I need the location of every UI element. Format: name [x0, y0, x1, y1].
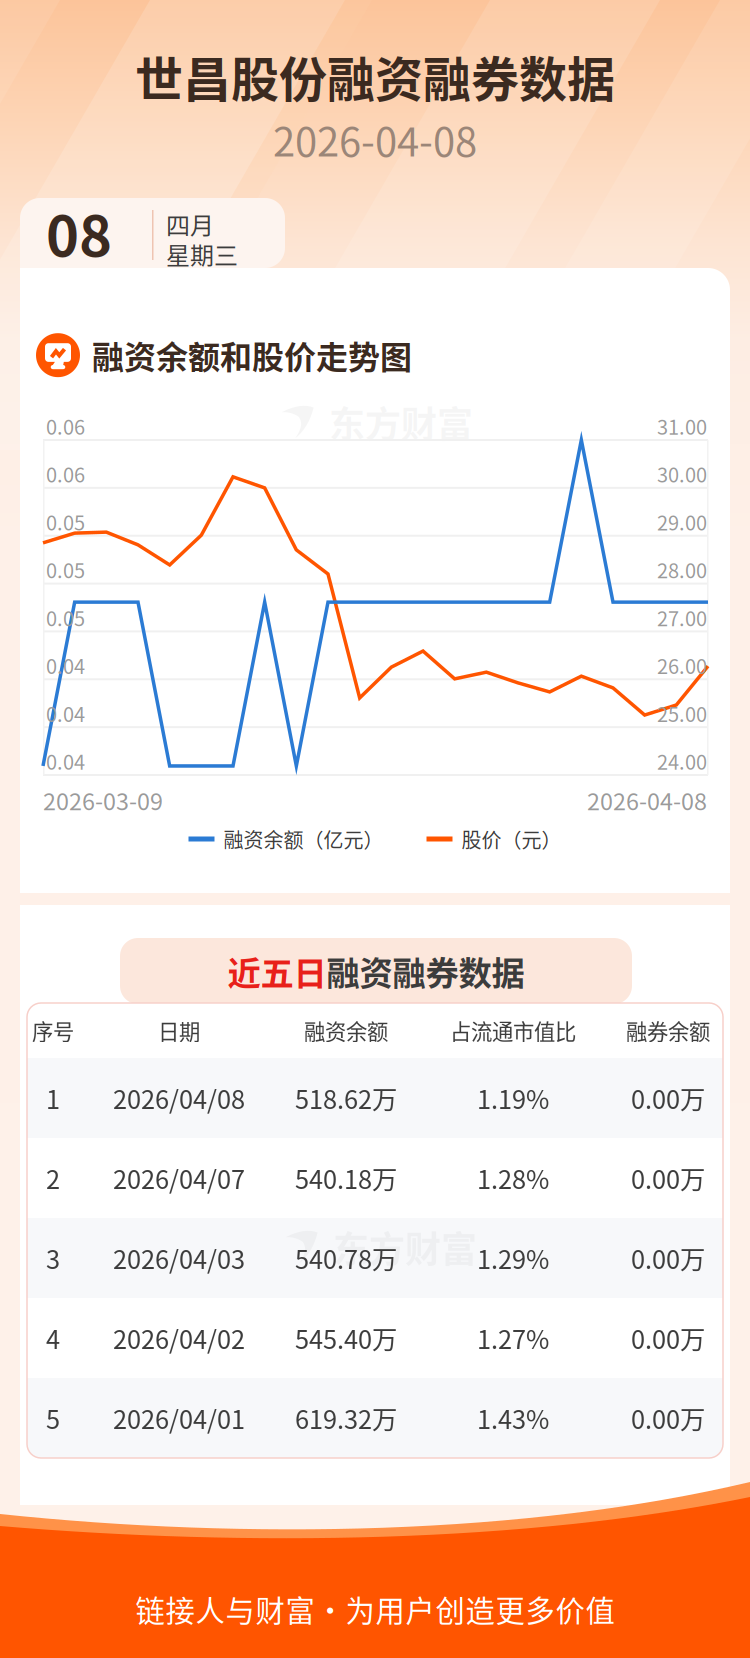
staticText: 30.00: [657, 459, 707, 488]
staticText: 1: [46, 1080, 60, 1116]
staticText: 东方财富: [329, 396, 473, 448]
staticText: 1.27%: [477, 1320, 549, 1356]
staticText: 股价（元）: [461, 824, 561, 853]
staticText: 3: [46, 1240, 60, 1276]
staticText: 1.28%: [477, 1160, 549, 1196]
staticText: 1.19%: [477, 1080, 549, 1116]
staticText: 545.40万: [295, 1320, 397, 1356]
staticText: 占流通市值比: [450, 1015, 576, 1046]
staticText: 近五日: [227, 947, 326, 995]
staticText: 0.00万: [631, 1240, 705, 1276]
staticText: 27.00: [657, 603, 707, 632]
staticText: 日期: [158, 1015, 200, 1046]
staticText: 08: [46, 191, 112, 273]
staticText: 0.00万: [631, 1160, 705, 1196]
staticText: 融资余额和股价走势图: [92, 332, 412, 378]
staticText: 融资余额: [304, 1015, 388, 1046]
staticText: 世昌股份融资融券数据: [135, 41, 615, 111]
staticText: 东方财富: [333, 1221, 477, 1273]
staticText: 链接人与财富·为用户创造更多价值: [135, 1588, 614, 1630]
staticText: 26.00: [657, 651, 707, 680]
staticText: 2026-04-08: [587, 783, 707, 817]
staticText: 28.00: [657, 555, 707, 584]
staticText: 2026/04/07: [113, 1160, 245, 1196]
staticText: 融资融券数据: [326, 947, 524, 995]
staticText: 0.00万: [631, 1080, 705, 1116]
staticText: 518.62万: [295, 1080, 397, 1116]
staticText: 融资余额（亿元）: [223, 824, 383, 853]
staticText: 29.00: [657, 507, 707, 536]
staticText: 1.43%: [477, 1400, 549, 1436]
staticText: 2026-03-09: [43, 783, 163, 817]
staticText: 2026-04-08: [273, 110, 477, 168]
staticText: 0.00万: [631, 1400, 705, 1436]
staticText: 0.05: [46, 507, 85, 536]
staticText: 0.06: [46, 411, 85, 440]
staticText: 0.05: [46, 555, 85, 584]
staticText: 序号: [32, 1015, 74, 1046]
staticText: 2026/04/01: [113, 1400, 245, 1436]
staticText: 540.78万: [295, 1240, 397, 1276]
staticText: 540.18万: [295, 1160, 397, 1196]
staticText: 星期三: [166, 237, 238, 271]
staticText: 1.29%: [477, 1240, 549, 1276]
staticText: 4: [46, 1320, 60, 1356]
staticText: 2026/04/02: [113, 1320, 245, 1356]
staticText: 24.00: [657, 746, 707, 775]
staticText: 2026/04/08: [113, 1080, 245, 1116]
staticText: 0.06: [46, 459, 85, 488]
staticText: 0.04: [46, 651, 85, 680]
staticText: 5: [46, 1400, 60, 1436]
staticText: 0.04: [46, 699, 85, 728]
staticText: 0.05: [46, 603, 85, 632]
staticText: 25.00: [657, 699, 707, 728]
staticText: 619.32万: [295, 1400, 397, 1436]
staticText: 2026/04/03: [113, 1240, 245, 1276]
staticText: 0.00万: [631, 1320, 705, 1356]
staticText: 四月: [166, 207, 214, 241]
staticText: 0.04: [46, 746, 85, 775]
staticText: 融券余额: [626, 1015, 710, 1046]
staticText: 2: [46, 1160, 60, 1196]
staticText: 31.00: [657, 411, 707, 440]
